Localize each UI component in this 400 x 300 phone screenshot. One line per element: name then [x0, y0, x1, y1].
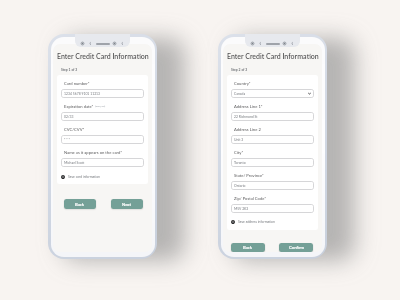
button[interactable]: * * *: [61, 135, 144, 144]
button[interactable]: 02/33: [61, 112, 144, 121]
staticText: Address Line 2: [234, 127, 261, 132]
staticText: City*: [234, 150, 244, 155]
staticText: 1234 5678 9101 11213: [64, 92, 101, 96]
button[interactable]: Unit 3: [231, 135, 314, 144]
staticText: Unit 3: [234, 138, 244, 142]
staticText: Toronto: [234, 161, 246, 165]
button[interactable]: Confirm: [279, 243, 313, 252]
button[interactable]: 1234 5678 9101 11213: [61, 89, 144, 98]
button[interactable]: Back: [231, 243, 265, 252]
button[interactable]: Toronto: [231, 158, 314, 167]
button[interactable]: 22 Richmond St: [231, 112, 314, 121]
button[interactable]: M5V 2K3: [231, 204, 314, 213]
staticText: Back: [75, 202, 85, 207]
staticText: Back: [243, 245, 253, 250]
button[interactable]: Next: [111, 199, 143, 209]
staticText: 02/33: [64, 115, 74, 119]
staticText: Save card information: [68, 175, 100, 179]
staticText: Confirm: [289, 245, 304, 250]
button[interactable]: Save card information: [61, 175, 100, 179]
button[interactable]: Save address information: [231, 220, 275, 224]
button[interactable]: Ontario: [231, 181, 314, 190]
staticText: Michael Scott: [64, 161, 85, 165]
staticText: Address Line 1*: [234, 104, 263, 109]
staticText: Next: [122, 202, 132, 207]
staticText: Expiration date*: [64, 104, 94, 109]
staticText: Name as it appears on the card*: [64, 150, 122, 155]
staticText: * * *: [64, 138, 71, 142]
staticText: State/ Province*: [234, 173, 264, 178]
staticText: (MM/YY): [95, 105, 106, 108]
staticText: Canada: [234, 92, 246, 96]
button[interactable]: Back: [64, 199, 96, 209]
staticText: Zip/ Postal Code*: [234, 196, 267, 201]
staticText: Ontario: [234, 184, 246, 188]
staticText: Step 1 of 3: [61, 68, 78, 72]
staticText: Enter Credit Card Information: [57, 52, 149, 60]
staticText: Enter Credit Card Information: [227, 52, 319, 60]
button[interactable]: Canada: [231, 89, 314, 98]
staticText: CVC/CVV*: [64, 127, 85, 132]
staticText: Card number*: [64, 81, 90, 86]
staticText: 22 Richmond St: [234, 115, 258, 119]
staticText: Country*: [234, 81, 251, 86]
staticText: M5V 2K3: [234, 207, 249, 211]
staticText: Save address information: [238, 220, 275, 224]
button[interactable]: Michael Scott: [61, 158, 144, 167]
staticText: Step 2 of 3: [231, 68, 248, 72]
